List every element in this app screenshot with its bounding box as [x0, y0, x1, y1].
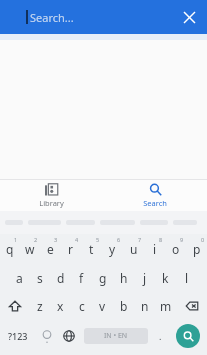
- button[interactable]: Change language: [57, 320, 80, 352]
- button[interactable]: i: [144, 234, 165, 264]
- staticText: p: [193, 241, 201, 257]
- button[interactable]: p: [186, 234, 207, 264]
- staticText: k: [162, 270, 169, 286]
- staticText: Search...: [30, 10, 74, 25]
- staticText: l: [185, 270, 189, 286]
- staticText: m: [160, 298, 172, 314]
- button[interactable]: g: [92, 264, 113, 292]
- staticText: b: [120, 298, 128, 314]
- button[interactable]: x: [50, 292, 71, 320]
- staticText: r: [68, 241, 73, 257]
- button[interactable]: y: [102, 234, 123, 264]
- staticText: y: [109, 241, 116, 257]
- staticText: 9: [180, 236, 184, 243]
- button[interactable]: t: [81, 234, 102, 264]
- button[interactable]: b: [113, 292, 134, 320]
- button[interactable]: z: [30, 292, 50, 320]
- button[interactable]: f: [71, 264, 92, 292]
- button[interactable]: w: [20, 234, 40, 264]
- button[interactable]: ?123: [0, 320, 36, 352]
- button[interactable]: Space: [84, 328, 148, 344]
- button[interactable]: e: [40, 234, 60, 264]
- staticText: i: [153, 241, 157, 257]
- staticText: j: [143, 270, 147, 286]
- staticText: d: [57, 270, 65, 286]
- staticText: s: [37, 270, 43, 286]
- staticText: .: [159, 330, 162, 342]
- button[interactable]: l: [176, 264, 197, 292]
- button[interactable]: Search: [176, 324, 200, 348]
- button[interactable]: k: [155, 264, 176, 292]
- staticText: q: [6, 241, 14, 257]
- button[interactable]: Backspace: [176, 292, 207, 320]
- staticText: 2: [34, 236, 38, 243]
- staticText: 1: [14, 236, 18, 243]
- staticText: h: [120, 270, 128, 286]
- button[interactable]: o: [165, 234, 186, 264]
- staticText: 5: [96, 236, 100, 243]
- button[interactable]: a: [9, 264, 29, 292]
- button[interactable]: Emoji: [36, 320, 57, 352]
- staticText: t: [89, 241, 94, 257]
- staticText: 8: [159, 236, 163, 243]
- staticText: g: [99, 270, 107, 286]
- button[interactable]: q: [0, 234, 20, 264]
- staticText: 4: [75, 236, 79, 243]
- staticText: o: [172, 241, 180, 257]
- button[interactable]: j: [134, 264, 155, 292]
- staticText: v: [99, 298, 106, 314]
- button[interactable]: n: [134, 292, 155, 320]
- staticText: ?123: [8, 330, 28, 342]
- staticText: u: [130, 241, 138, 257]
- button[interactable]: u: [123, 234, 144, 264]
- button[interactable]: c: [71, 292, 92, 320]
- staticText: IN • EN: [104, 331, 128, 341]
- button[interactable]: h: [113, 264, 134, 292]
- button[interactable]: .: [152, 320, 169, 352]
- staticText: w: [25, 241, 35, 257]
- staticText: e: [47, 241, 54, 257]
- button[interactable]: m: [155, 292, 176, 320]
- staticText: a: [16, 270, 23, 286]
- staticText: z: [37, 298, 43, 314]
- button[interactable]: r: [60, 234, 81, 264]
- button[interactable]: s: [29, 264, 50, 292]
- button[interactable]: Close search: [176, 4, 202, 30]
- staticText: n: [141, 298, 149, 314]
- staticText: Search: [143, 198, 167, 208]
- staticText: c: [79, 298, 85, 314]
- button[interactable]: Library: [0, 180, 103, 211]
- staticText: f: [79, 270, 84, 286]
- staticText: 7: [138, 236, 142, 243]
- staticText: 0: [201, 236, 205, 243]
- button[interactable]: v: [92, 292, 113, 320]
- button[interactable]: Shift: [0, 292, 30, 320]
- staticText: x: [57, 298, 64, 314]
- staticText: 3: [54, 236, 58, 243]
- button[interactable]: Search: [103, 180, 207, 211]
- button[interactable]: d: [50, 264, 71, 292]
- staticText: Library: [39, 198, 64, 208]
- staticText: 6: [117, 236, 121, 243]
